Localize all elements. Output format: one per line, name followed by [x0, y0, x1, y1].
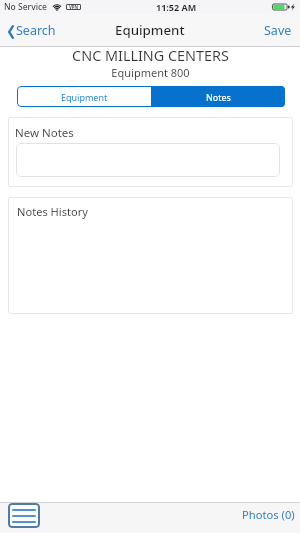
button[interactable]: Equipment	[17, 86, 151, 107]
staticText: New Notes	[15, 125, 74, 141]
staticText: Notes History	[17, 204, 88, 219]
staticText: Equipment	[61, 91, 108, 103]
staticText: No Service	[4, 1, 47, 13]
staticText: Notes	[206, 91, 231, 103]
button[interactable]: Search	[0, 14, 62, 46]
staticText: VPN	[69, 4, 79, 10]
staticText: Photos (0)	[242, 507, 295, 522]
button[interactable]	[16, 143, 280, 177]
staticText: Equipment 800	[111, 65, 190, 80]
button[interactable]: Notes	[151, 86, 285, 107]
staticText: Search	[16, 22, 56, 39]
button[interactable]: Photos (0)	[242, 507, 295, 522]
staticText: Save	[264, 22, 292, 39]
staticText: CNC MILLING CENTERS	[72, 46, 229, 66]
button[interactable]: Save	[258, 14, 300, 46]
staticText: 11:52 AM	[156, 1, 197, 13]
staticText: Equipment	[115, 21, 185, 39]
button[interactable]: Menu	[8, 503, 40, 528]
